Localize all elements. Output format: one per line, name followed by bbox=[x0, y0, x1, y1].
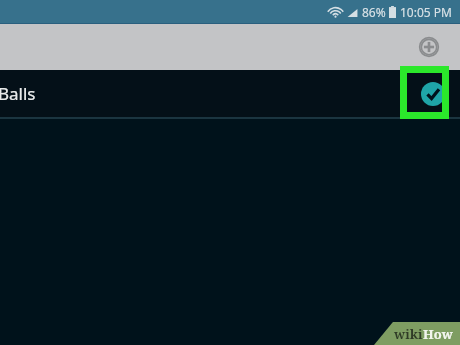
staticText: wiki bbox=[394, 325, 423, 343]
staticText: How bbox=[423, 325, 453, 343]
staticText: 86% bbox=[362, 4, 386, 20]
button[interactable]: Selected bbox=[418, 79, 448, 109]
button[interactable]: Add bbox=[412, 30, 446, 64]
staticText: 10:05 PM bbox=[400, 4, 452, 20]
staticText: Balls bbox=[0, 82, 36, 105]
button[interactable]: Balls bbox=[0, 70, 460, 117]
